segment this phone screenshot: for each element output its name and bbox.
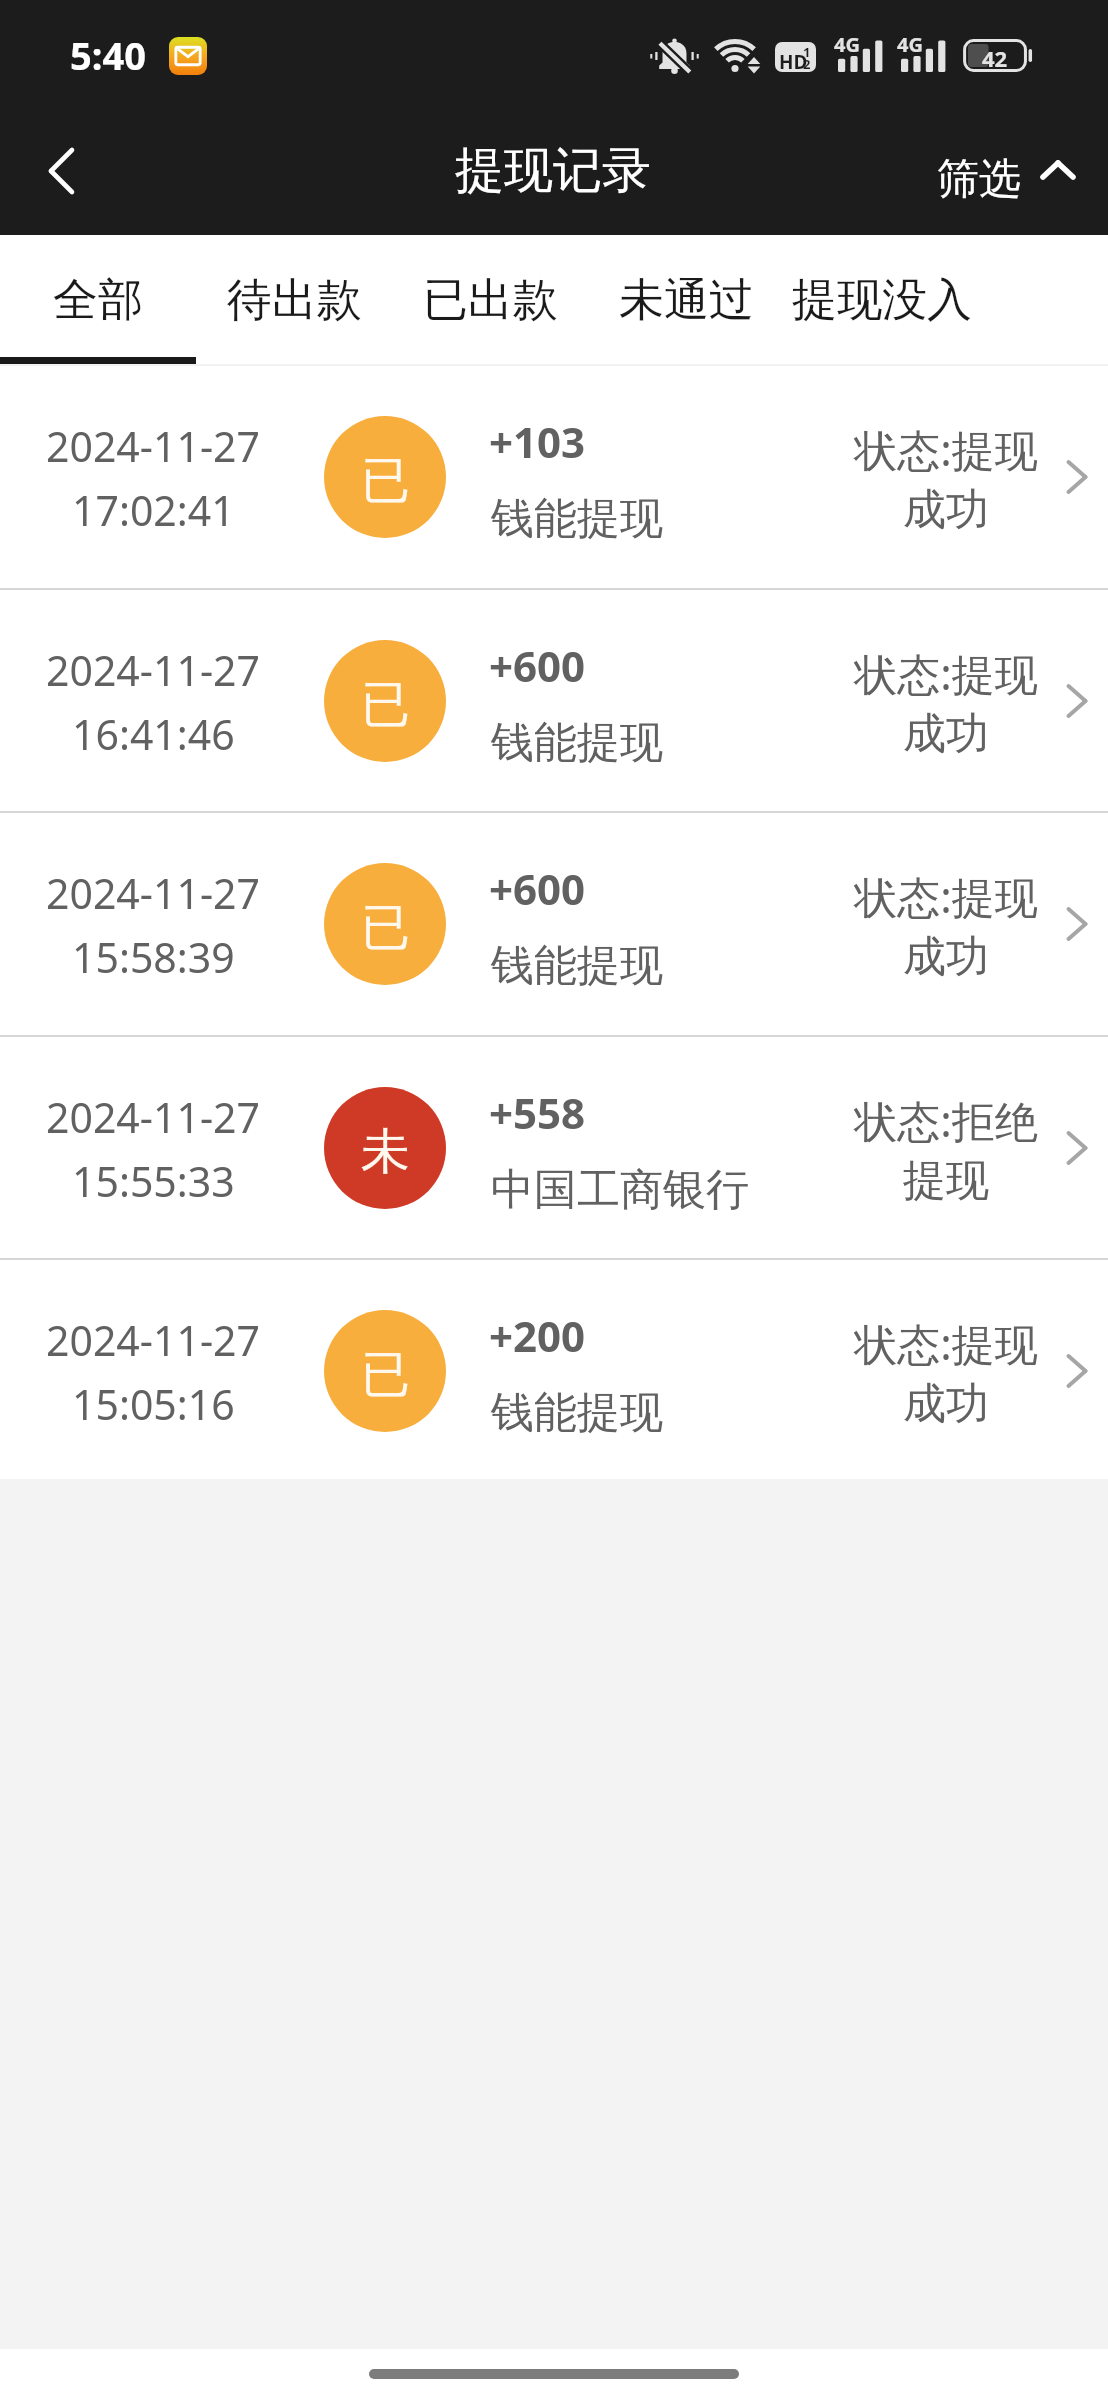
staticText: 中国工商银行 [491, 1163, 749, 1217]
staticText: 2024-11-27 [46, 418, 261, 474]
button[interactable]: 2024-11-27 [0, 1260, 1108, 1482]
staticText: 成功 [846, 930, 1046, 984]
button[interactable]: 未通过 [588, 235, 784, 364]
button[interactable]: 筛选 [910, 118, 1108, 235]
staticText: 成功 [846, 1377, 1046, 1431]
staticText: 2024-11-27 [46, 865, 261, 921]
staticText: 全部 [53, 272, 143, 329]
button[interactable]: 2024-11-27 [0, 1037, 1108, 1259]
staticText: 未 [361, 1121, 410, 1183]
staticText: 状态:拒绝 [846, 1091, 1046, 1150]
button[interactable]: 2024-11-27 [0, 366, 1108, 588]
staticText: 1 [803, 43, 811, 61]
staticText: 成功 [846, 483, 1046, 537]
staticText: 2 [803, 55, 811, 72]
staticText: 已 [361, 1344, 410, 1406]
button[interactable]: 2024-11-27 [0, 590, 1108, 812]
staticText: 钱能提现 [491, 939, 663, 993]
staticText: +600 [489, 637, 586, 694]
button[interactable]: 已出款 [392, 235, 588, 364]
staticText: 2024-11-27 [46, 1089, 261, 1145]
staticText: 15:55:33 [72, 1153, 235, 1209]
staticText: +600 [489, 860, 586, 917]
staticText: 状态:提现 [846, 867, 1046, 926]
staticText: 未通过 [619, 272, 754, 329]
staticText: 已 [361, 450, 410, 512]
staticText: +103 [489, 413, 586, 470]
staticText: 提现记录 [455, 140, 651, 202]
staticText: 状态:提现 [846, 420, 1046, 479]
staticText: 钱能提现 [491, 1386, 663, 1440]
staticText: 筛选 [937, 153, 1021, 206]
staticText: 成功 [846, 707, 1046, 761]
button[interactable]: Back [0, 118, 130, 235]
staticText: 已出款 [423, 272, 558, 329]
staticText: 15:05:16 [72, 1376, 235, 1432]
button[interactable]: 待出款 [196, 235, 392, 364]
staticText: 待出款 [227, 272, 362, 329]
staticText: 钱能提现 [491, 716, 663, 770]
staticText: 17:02:41 [72, 482, 235, 538]
staticText: 钱能提现 [491, 492, 663, 546]
staticText: HD [779, 49, 808, 72]
staticText: 16:41:46 [72, 706, 235, 762]
staticText: 5:40 [70, 29, 146, 81]
staticText: 15:58:39 [72, 929, 235, 985]
staticText: 2024-11-27 [46, 642, 261, 698]
staticText: 42 [982, 43, 1008, 73]
button[interactable]: 全部 [0, 235, 196, 364]
staticText: 状态:提现 [846, 1314, 1046, 1373]
button[interactable]: 提现没入 [784, 235, 980, 364]
staticText: +558 [489, 1084, 586, 1141]
staticText: 提现 [846, 1154, 1046, 1208]
staticText: 已 [361, 674, 410, 736]
staticText: 4G [897, 31, 923, 58]
staticText: 状态:提现 [846, 644, 1046, 703]
staticText: 2024-11-27 [46, 1312, 261, 1368]
staticText: 已 [361, 897, 410, 959]
button[interactable]: 2024-11-27 [0, 813, 1108, 1035]
staticText: 4G [834, 31, 860, 58]
staticText: 提现没入 [792, 272, 972, 329]
staticText: +200 [489, 1307, 586, 1364]
